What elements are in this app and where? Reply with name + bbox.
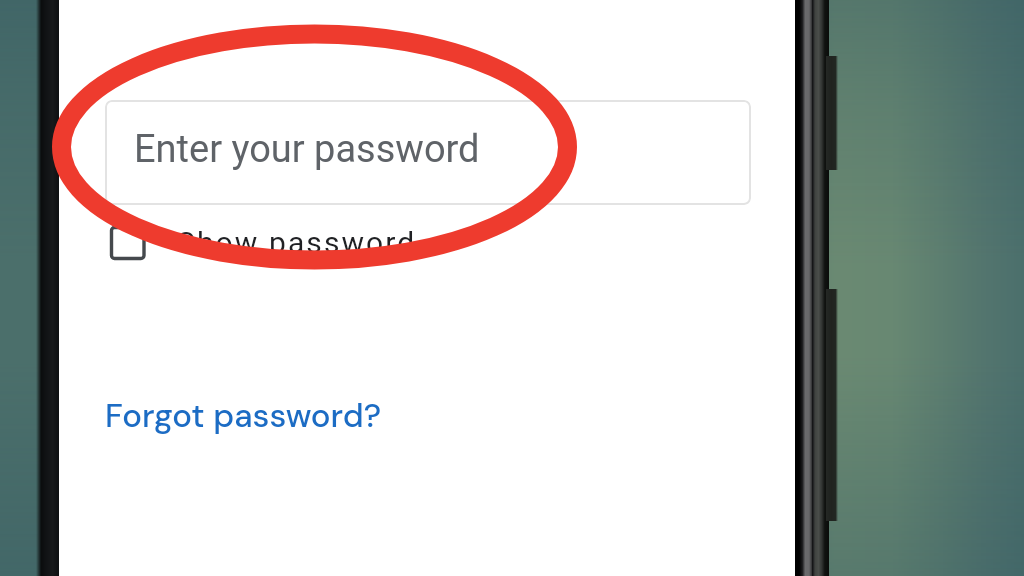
staticText: Show password (177, 225, 417, 260)
button[interactable]: Forgot password? (99, 390, 376, 440)
staticText: Enter your password (134, 127, 480, 172)
button[interactable]: Show password (99, 217, 391, 269)
staticText: Forgot password? (105, 394, 382, 437)
button[interactable]: Enter your password (105, 100, 751, 205)
